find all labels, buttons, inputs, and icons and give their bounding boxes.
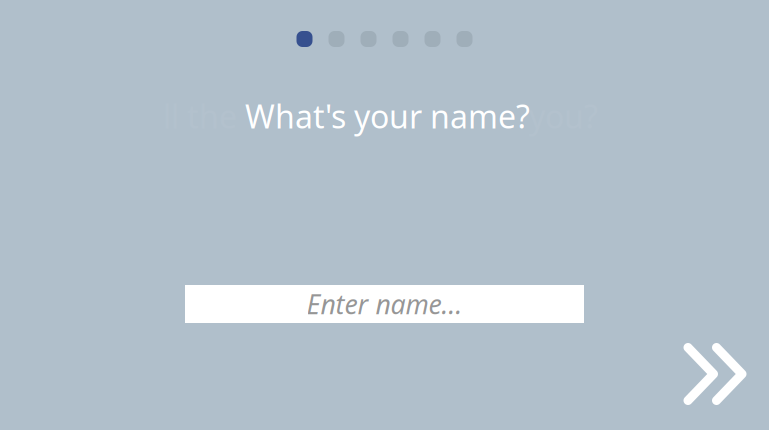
button[interactable]: Page 1 of 6 (296, 31, 312, 47)
button[interactable]: Page 2 of 6 (328, 31, 344, 47)
button[interactable]: Page 5 of 6 (424, 31, 440, 47)
button[interactable]: Enter name... (185, 285, 584, 323)
button[interactable]: Page 4 of 6 (392, 31, 408, 47)
button[interactable]: Page 6 of 6 (456, 31, 472, 47)
button[interactable]: Next (675, 339, 755, 409)
staticText: Enter name... (306, 286, 462, 322)
button[interactable]: Page 3 of 6 (360, 31, 376, 47)
staticText: What's your name? (245, 95, 530, 137)
